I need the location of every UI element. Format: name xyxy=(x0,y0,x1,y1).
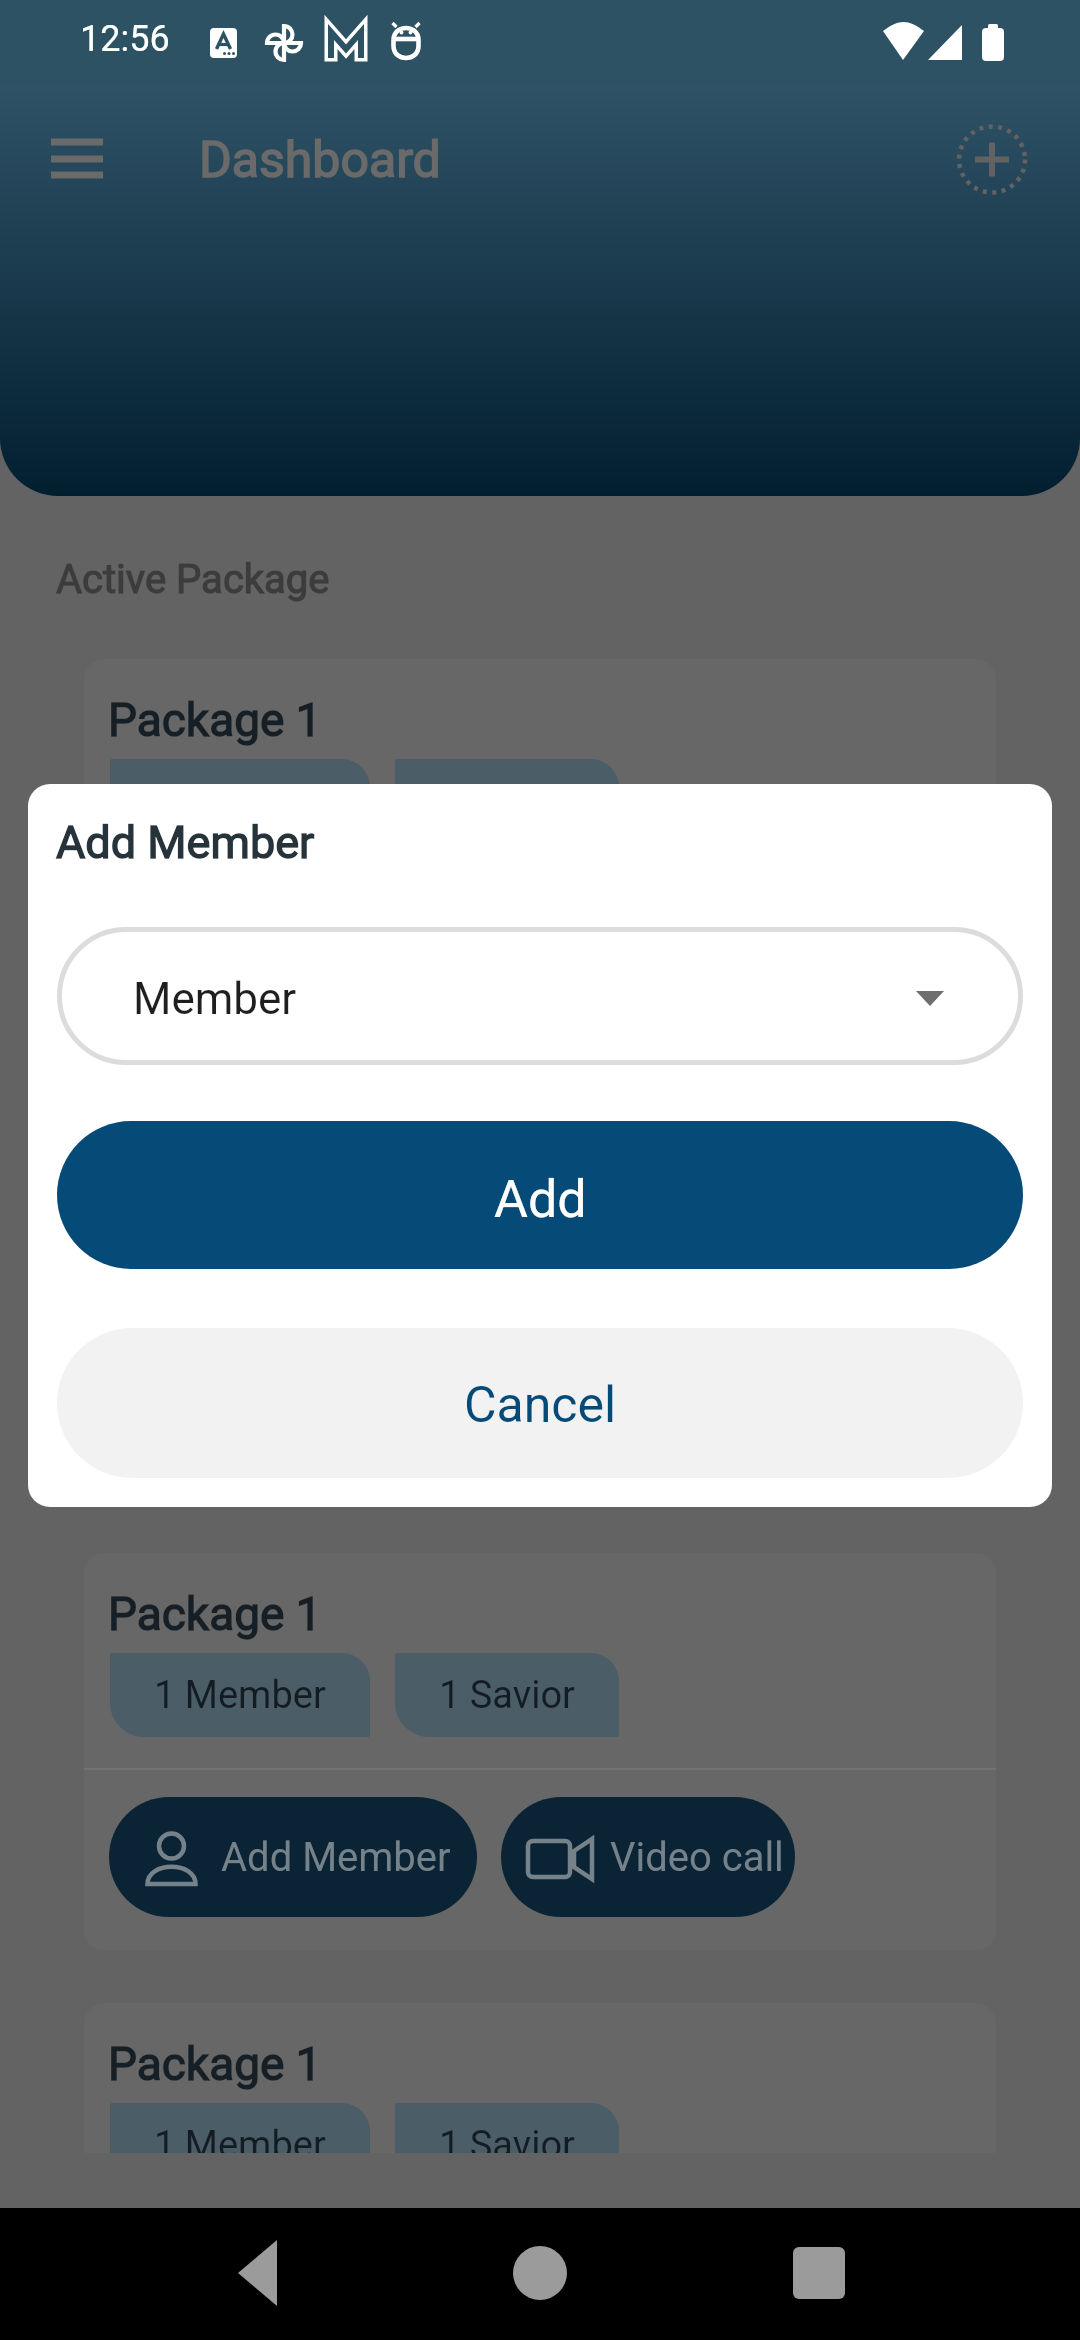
staticText: Video call xyxy=(610,1834,784,1881)
staticText: Active Package xyxy=(56,556,330,603)
staticText: 1 Savior xyxy=(439,2123,575,2153)
staticText: 1 Member xyxy=(154,779,326,824)
button[interactable]: Member xyxy=(57,927,1023,1065)
button[interactable]: Package 1 xyxy=(84,659,996,1499)
staticText: Package 1 xyxy=(108,2037,322,2091)
button[interactable]: Package 1 xyxy=(84,2003,996,2153)
staticText: Add Member xyxy=(56,816,315,869)
staticText: 1 Member xyxy=(154,1673,326,1718)
staticText: 1 Member xyxy=(154,2123,326,2153)
button[interactable]: Cancel xyxy=(57,1328,1023,1478)
staticText: Dashboard xyxy=(199,131,441,190)
button[interactable]: Add Member xyxy=(109,903,477,1023)
staticText: Package 1 xyxy=(108,1587,322,1641)
button[interactable]: Add xyxy=(57,1121,1023,1269)
button[interactable]: Open navigation menu xyxy=(51,126,103,194)
staticText: Package 1 xyxy=(108,693,322,747)
staticText: Member xyxy=(133,973,297,1025)
staticText: Add Member xyxy=(221,1834,451,1881)
staticText: Add Member xyxy=(221,940,451,987)
staticText: 1 Savior xyxy=(439,1673,575,1718)
button[interactable]: Add Member xyxy=(109,1797,477,1917)
button[interactable]: Video call xyxy=(501,903,795,1023)
staticText: 12:56 xyxy=(80,18,170,60)
staticText: 1 Savior xyxy=(439,779,575,824)
button[interactable]: Package 1 xyxy=(84,1553,996,1950)
staticText: Cancel xyxy=(464,1376,617,1435)
button[interactable]: Add package xyxy=(944,112,1040,208)
staticText: Add xyxy=(494,1169,587,1230)
button[interactable]: Video call xyxy=(501,1797,795,1917)
